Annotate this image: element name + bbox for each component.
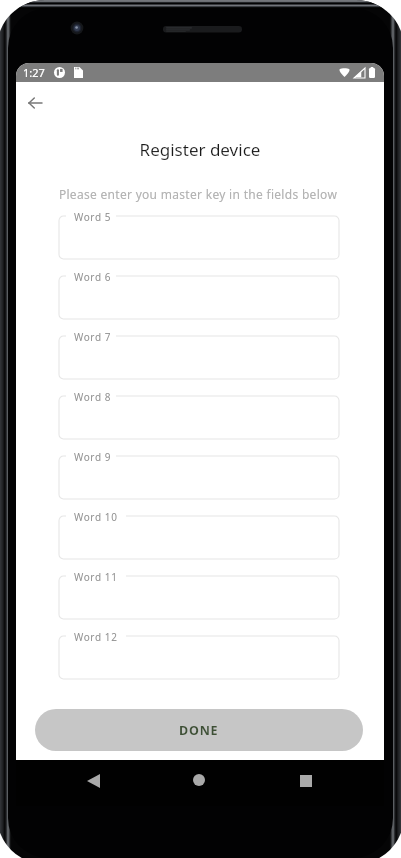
staticText: Word 5 — [74, 210, 112, 224]
staticText: Word 10 — [74, 510, 118, 524]
staticText: Word 11 — [74, 570, 118, 584]
staticText: Word 7 — [74, 330, 112, 344]
staticText: DONE — [179, 722, 219, 739]
button[interactable]: DONE — [35, 709, 363, 751]
staticText: Word 9 — [74, 450, 112, 464]
staticText: Word 12 — [74, 630, 118, 644]
button[interactable]: Home — [178, 759, 220, 801]
staticText: 1:27 — [23, 65, 45, 80]
button[interactable]: Back — [16, 83, 55, 123]
staticText: Please enter you master key in the field… — [16, 186, 382, 202]
staticText: Register device — [16, 138, 384, 161]
button[interactable]: Recent apps — [285, 760, 327, 802]
button[interactable]: Back — [72, 760, 114, 802]
staticText: Word 6 — [74, 270, 112, 284]
staticText: Word 8 — [74, 390, 112, 404]
